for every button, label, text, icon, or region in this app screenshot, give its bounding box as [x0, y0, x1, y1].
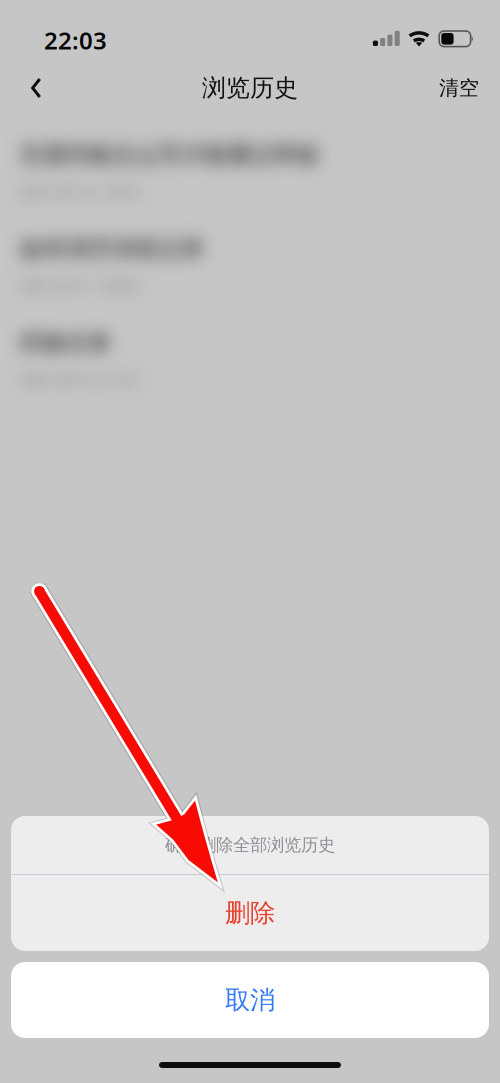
button[interactable]: 如何清空浏览记录 — [0, 218, 500, 312]
staticText: 删除 — [225, 897, 275, 928]
button[interactable]: 百度经验怎么写才能通过审核 — [0, 124, 500, 218]
staticText: 经验任务 — [20, 329, 112, 357]
staticText: 22:03 — [44, 24, 107, 56]
button[interactable]: 取消 — [11, 962, 489, 1038]
staticText: 如何清空浏览记录 — [20, 235, 204, 263]
button[interactable]: 经验任务 — [0, 312, 500, 406]
staticText: 清空 — [439, 76, 479, 100]
staticText: 百度经验怎么写才能通过审核 — [20, 141, 319, 169]
button[interactable]: 删除 — [11, 875, 489, 951]
button[interactable]: 清空 — [0, 0, 72, 44]
staticText: 取消 — [225, 984, 275, 1015]
staticText: 确认删除全部浏览历史 — [165, 834, 335, 856]
staticText: 浏览历史 — [202, 73, 298, 103]
